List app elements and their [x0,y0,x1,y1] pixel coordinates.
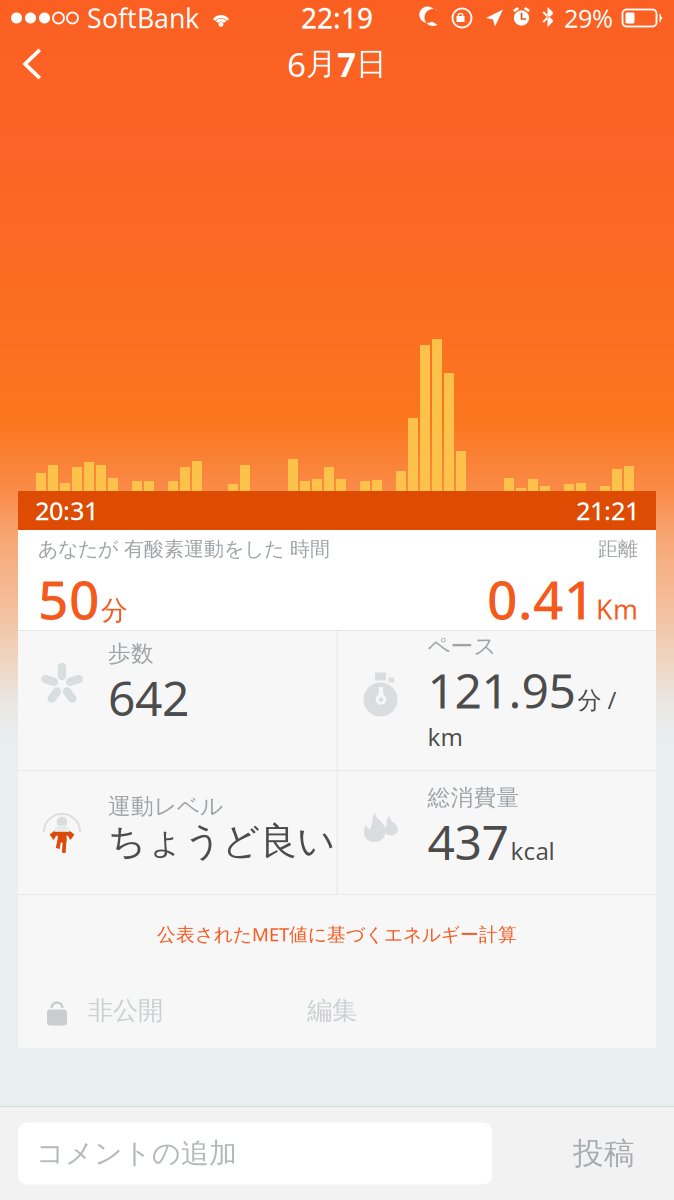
staticText: Km [596,591,638,627]
staticText: 編集 [307,995,357,1026]
staticText: 21:21 [576,494,639,527]
staticText: 月 [306,45,337,83]
staticText: 歩数 [108,640,154,667]
staticText: 日 [356,45,387,83]
button[interactable]: 編集 [271,973,393,1048]
staticText: 50 [38,563,100,634]
staticText: 公表されたMET値に基づくエネルギー計算 [157,922,517,946]
button[interactable]: コメントの追加 [18,1122,492,1184]
staticText: 7 [337,42,356,86]
staticText: 非公開 [88,995,163,1026]
button[interactable]: 投稿 [534,1122,674,1184]
staticText: 29% [564,1,613,35]
staticText: 642 [108,665,189,729]
button[interactable]: Back [0,36,66,92]
staticText: 運動レベル [108,793,223,820]
button[interactable]: 公表されたMET値に基づくエネルギー計算 [18,895,656,973]
staticText: ちょうど良い [108,818,335,864]
staticText: 距離 [598,537,638,561]
staticText: 0.41 [487,563,595,634]
staticText: 総消費量 [427,784,519,811]
staticText: 分 / [577,684,616,716]
staticText: あなたが 有酸素運動をした 時間 [38,537,330,561]
button[interactable]: 非公開 [18,973,181,1048]
staticText: SoftBank [87,0,199,36]
staticText: kcal [510,835,554,867]
staticText: ペース [427,632,496,660]
staticText: 投稿 [573,1135,635,1172]
staticText: 437 [427,809,508,873]
staticText: コメントの追加 [36,1136,237,1171]
staticText: 20:31 [35,494,98,527]
staticText: km [427,721,462,753]
staticText: 121.95 [427,658,575,722]
staticText: 分 [101,594,128,627]
staticText: 22:19 [301,0,373,37]
staticText: 6 [287,42,306,86]
